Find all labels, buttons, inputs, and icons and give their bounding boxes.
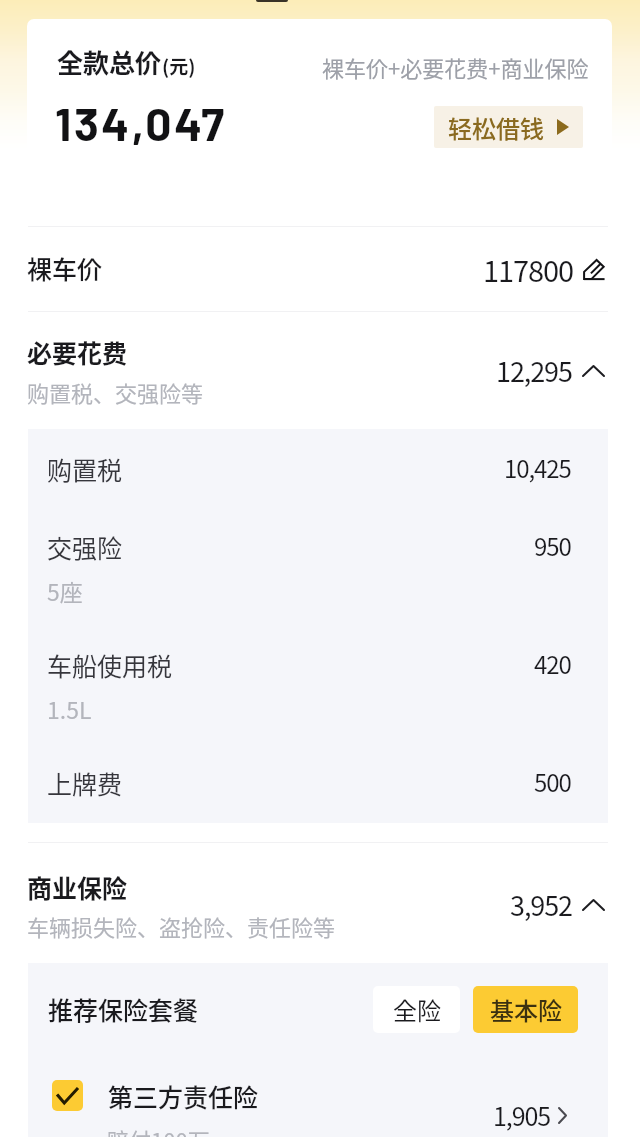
staticText: 裸车价: [27, 250, 103, 286]
staticText: 134,047: [55, 95, 227, 150]
staticText: 3,952: [510, 885, 572, 924]
staticText: 420: [534, 646, 571, 681]
staticText: 5座: [47, 574, 83, 607]
staticText: 车船使用税: [47, 647, 173, 683]
staticText: 赔付100万: [107, 1123, 210, 1137]
staticText: 950: [534, 528, 571, 563]
staticText: 裸车价+必要花费+商业保险: [322, 51, 589, 83]
button[interactable]: [0, 289, 640, 429]
staticText: 交强险: [47, 529, 123, 565]
staticText: 全险: [393, 992, 441, 1027]
button[interactable]: 全险: [373, 986, 460, 1033]
staticText: 车辆损失险、盗抢险、责任险等: [27, 910, 336, 942]
button[interactable]: [0, 843, 640, 963]
button[interactable]: [0, 227, 640, 288]
button[interactable]: 轻松借钱: [434, 106, 583, 148]
staticText: 全款总价: [57, 43, 162, 81]
staticText: 1.5L: [47, 692, 92, 725]
staticText: 购置税、交强险等: [27, 376, 204, 408]
other: Collapse section: [582, 365, 605, 377]
other: Edit price: [583, 258, 605, 280]
staticText: 商业保险: [27, 869, 128, 905]
staticText: 上牌费: [47, 765, 123, 801]
button[interactable]: [28, 1063, 608, 1137]
staticText: 基本险: [490, 992, 562, 1027]
staticText: 1,905: [493, 1097, 550, 1133]
staticText: 推荐保险套餐: [48, 991, 199, 1027]
staticText: (元): [162, 52, 196, 80]
staticText: 第三方责任险: [108, 1078, 259, 1114]
staticText: 购置税: [47, 451, 123, 487]
staticText: 500: [534, 764, 571, 799]
button[interactable]: 基本险: [473, 986, 578, 1033]
staticText: 轻松借钱: [448, 110, 544, 145]
staticText: 117800: [483, 248, 573, 290]
staticText: 10,425: [504, 450, 571, 485]
other: Collapse section: [582, 899, 605, 911]
staticText: 12,295: [496, 351, 572, 390]
staticText: 必要花费: [27, 334, 128, 370]
other: Open details: [558, 1107, 567, 1124]
